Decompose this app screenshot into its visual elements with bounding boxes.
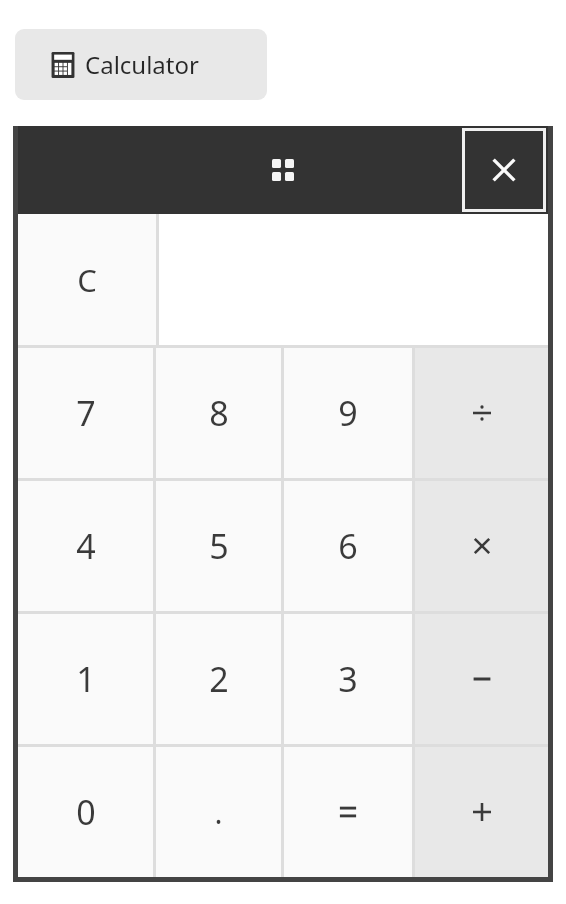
staticText: 7 [76,390,96,436]
staticText: 4 [76,523,96,569]
button[interactable]: Close [462,128,546,212]
button[interactable]: 3 [284,614,412,744]
button[interactable]: Subtract [415,614,548,744]
button[interactable]: 6 [284,481,412,611]
button[interactable]: 5 [156,481,281,611]
staticText: C [77,259,97,301]
button[interactable]: Equals [284,747,412,877]
button[interactable]: C [18,214,156,345]
staticText: 3 [338,656,358,702]
button[interactable]: . [156,747,281,877]
button[interactable]: 9 [284,348,412,478]
button[interactable]: Divide [415,348,548,478]
button[interactable]: 8 [156,348,281,478]
button[interactable]: Calculator [15,29,267,100]
button[interactable]: 7 [18,348,153,478]
button[interactable]: Apps [262,149,304,191]
button[interactable]: 0 [18,747,153,877]
staticText: 5 [209,523,229,569]
staticText: 2 [209,656,229,702]
staticText: 6 [338,523,358,569]
staticText: 8 [209,390,229,436]
button[interactable]: 2 [156,614,281,744]
button[interactable]: 4 [18,481,153,611]
button[interactable]: 1 [18,614,153,744]
button[interactable]: Multiply [415,481,548,611]
staticText: 9 [338,390,358,436]
button[interactable]: Add [415,747,548,877]
staticText: . [214,792,223,833]
staticText: Calculator [85,48,199,81]
staticText: 1 [76,656,96,702]
staticText: 0 [76,789,96,835]
